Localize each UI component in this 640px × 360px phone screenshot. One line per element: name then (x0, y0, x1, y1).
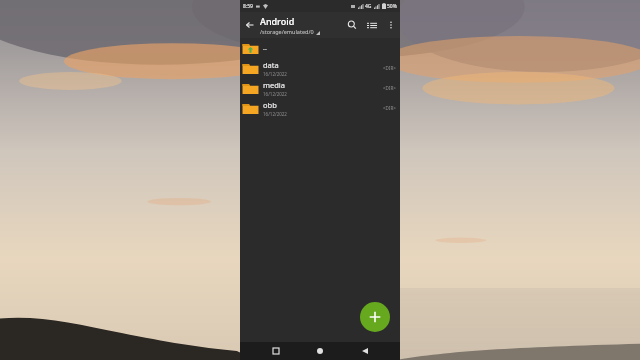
staticText: <DIR> (383, 85, 396, 91)
staticText: .. (263, 43, 267, 53)
button[interactable]: data (240, 58, 400, 78)
button[interactable]: Back (240, 15, 260, 35)
button[interactable]: media (240, 78, 400, 98)
staticText: 16/12/2022 (263, 91, 287, 97)
button[interactable]: Search (342, 15, 362, 35)
button[interactable]: Back (356, 342, 374, 360)
staticText: 16/12/2022 (263, 71, 287, 77)
staticText: <DIR> (383, 105, 396, 111)
button[interactable]: Home (311, 342, 329, 360)
staticText: <DIR> (383, 65, 396, 71)
button[interactable]: View mode (362, 15, 382, 35)
button[interactable]: Add (360, 302, 390, 332)
staticText: 16/12/2022 (263, 111, 287, 117)
staticText: Android (260, 15, 295, 27)
button[interactable]: .. (240, 38, 400, 58)
button[interactable]: obb (240, 98, 400, 118)
staticText: media (263, 80, 285, 90)
staticText: 50% (387, 3, 397, 10)
button[interactable]: Recent apps (267, 342, 285, 360)
staticText: 4G (365, 3, 372, 10)
staticText: obb (263, 100, 277, 110)
staticText: /storage/emulated/0 (260, 28, 314, 35)
staticText: 8:59 (243, 3, 253, 10)
button[interactable]: More options (382, 16, 400, 34)
staticText: data (263, 60, 279, 70)
